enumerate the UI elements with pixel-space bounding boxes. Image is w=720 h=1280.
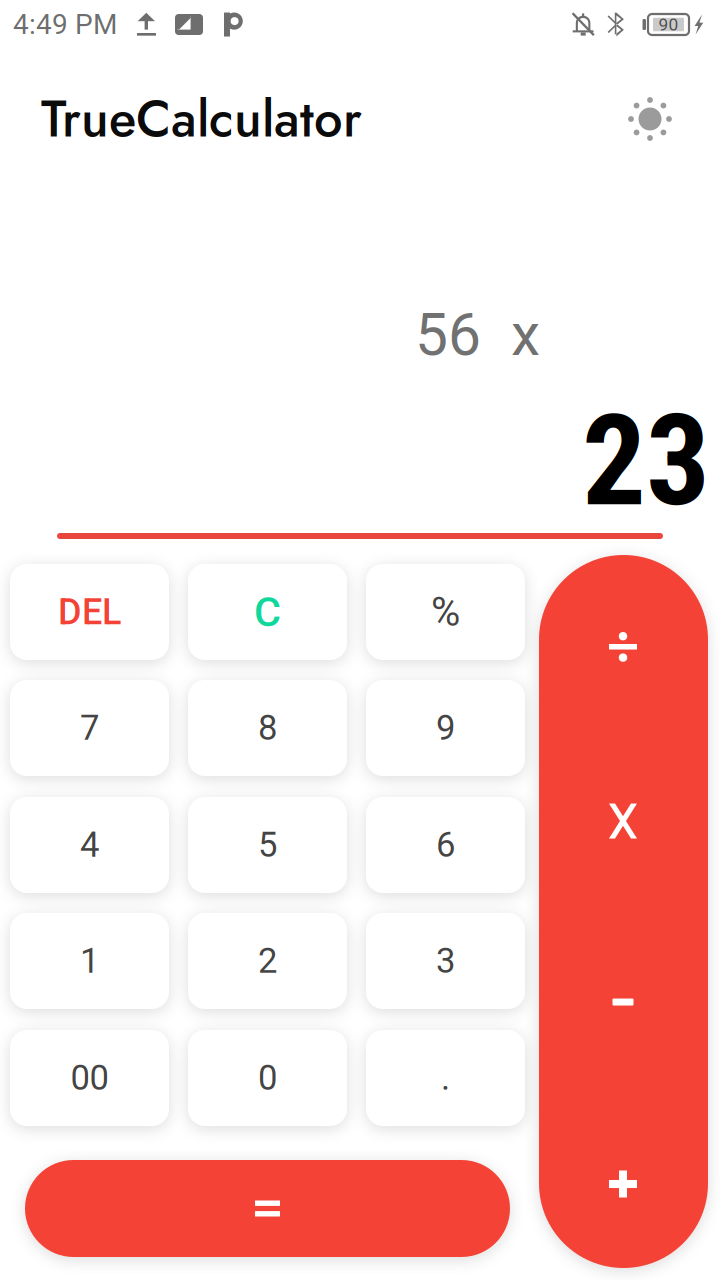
staticText: 7	[80, 708, 99, 748]
staticText: %	[431, 589, 460, 635]
button[interactable]	[25, 1160, 510, 1257]
button[interactable]: 9	[366, 680, 525, 776]
staticText: 9	[436, 708, 455, 748]
staticText: 23	[582, 387, 710, 535]
button[interactable]: C	[188, 564, 347, 660]
button[interactable]: Operators	[539, 555, 708, 1268]
button[interactable]: 8	[188, 680, 347, 776]
button[interactable]: 7	[10, 680, 169, 776]
staticText: .	[441, 1058, 450, 1098]
staticText: TrueCalculator	[41, 82, 362, 156]
staticText: 4	[80, 825, 99, 865]
button[interactable]: DEL	[10, 564, 169, 660]
button[interactable]: 00	[10, 1030, 169, 1126]
staticText: 3	[436, 941, 455, 981]
staticText: 2	[258, 941, 277, 981]
staticText: 5	[258, 825, 277, 865]
button[interactable]: 1	[10, 913, 169, 1009]
staticText: 1	[80, 941, 99, 981]
staticText: 4:49 PM	[13, 8, 117, 41]
button[interactable]: %	[366, 564, 525, 660]
button[interactable]: 5	[188, 797, 347, 893]
button[interactable]: 2	[188, 913, 347, 1009]
staticText: 0	[258, 1058, 277, 1098]
button[interactable]: 3	[366, 913, 525, 1009]
staticText: 56 x	[415, 301, 540, 369]
staticText: 90	[658, 14, 678, 35]
button[interactable]: Toggle brightness	[627, 96, 673, 142]
staticText: DEL	[58, 591, 121, 633]
button[interactable]: 0	[188, 1030, 347, 1126]
button[interactable]: .	[366, 1030, 525, 1126]
staticText: C	[254, 588, 281, 636]
staticText: 00	[70, 1058, 108, 1098]
staticText: 8	[258, 708, 277, 748]
button[interactable]: 4	[10, 797, 169, 893]
staticText: 6	[436, 825, 455, 865]
button[interactable]: 6	[366, 797, 525, 893]
